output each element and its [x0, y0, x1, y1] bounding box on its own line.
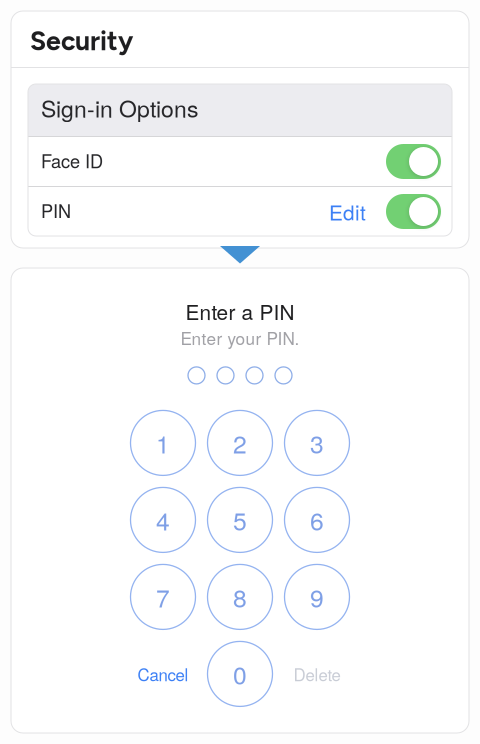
button[interactable]: Delete — [278, 635, 355, 712]
staticText: Cancel — [137, 662, 188, 686]
button[interactable]: 4 — [124, 481, 201, 558]
staticText: Sign-in Options — [41, 91, 198, 124]
button[interactable]: Face ID — [386, 144, 441, 179]
staticText: 7 — [156, 579, 170, 615]
button[interactable]: 8 — [201, 558, 278, 635]
staticText: Edit — [329, 197, 366, 226]
button[interactable]: 6 — [278, 481, 355, 558]
button[interactable]: 5 — [201, 481, 278, 558]
staticText: Delete — [293, 662, 340, 686]
staticText: Enter your PIN. — [180, 325, 299, 350]
staticText: Enter a PIN — [185, 296, 294, 326]
staticText: Face ID — [41, 147, 103, 173]
staticText: Security — [30, 25, 133, 57]
staticText: 3 — [310, 425, 324, 461]
staticText: 4 — [156, 502, 170, 538]
staticText: 1 — [156, 425, 170, 461]
staticText: 2 — [233, 425, 247, 461]
button[interactable]: 3 — [278, 404, 355, 481]
button[interactable]: Edit — [319, 190, 386, 233]
staticText: 0 — [233, 656, 247, 692]
button[interactable]: 0 — [201, 635, 278, 712]
button[interactable]: 7 — [124, 558, 201, 635]
staticText: 5 — [233, 502, 247, 538]
staticText: PIN — [41, 197, 71, 223]
staticText: 9 — [310, 579, 324, 615]
button[interactable]: 9 — [278, 558, 355, 635]
staticText: 6 — [310, 502, 324, 538]
staticText: 8 — [233, 579, 247, 615]
button[interactable]: Cancel — [124, 635, 201, 712]
button[interactable]: PIN — [386, 194, 441, 229]
button[interactable]: 1 — [124, 404, 201, 481]
button[interactable]: 2 — [201, 404, 278, 481]
